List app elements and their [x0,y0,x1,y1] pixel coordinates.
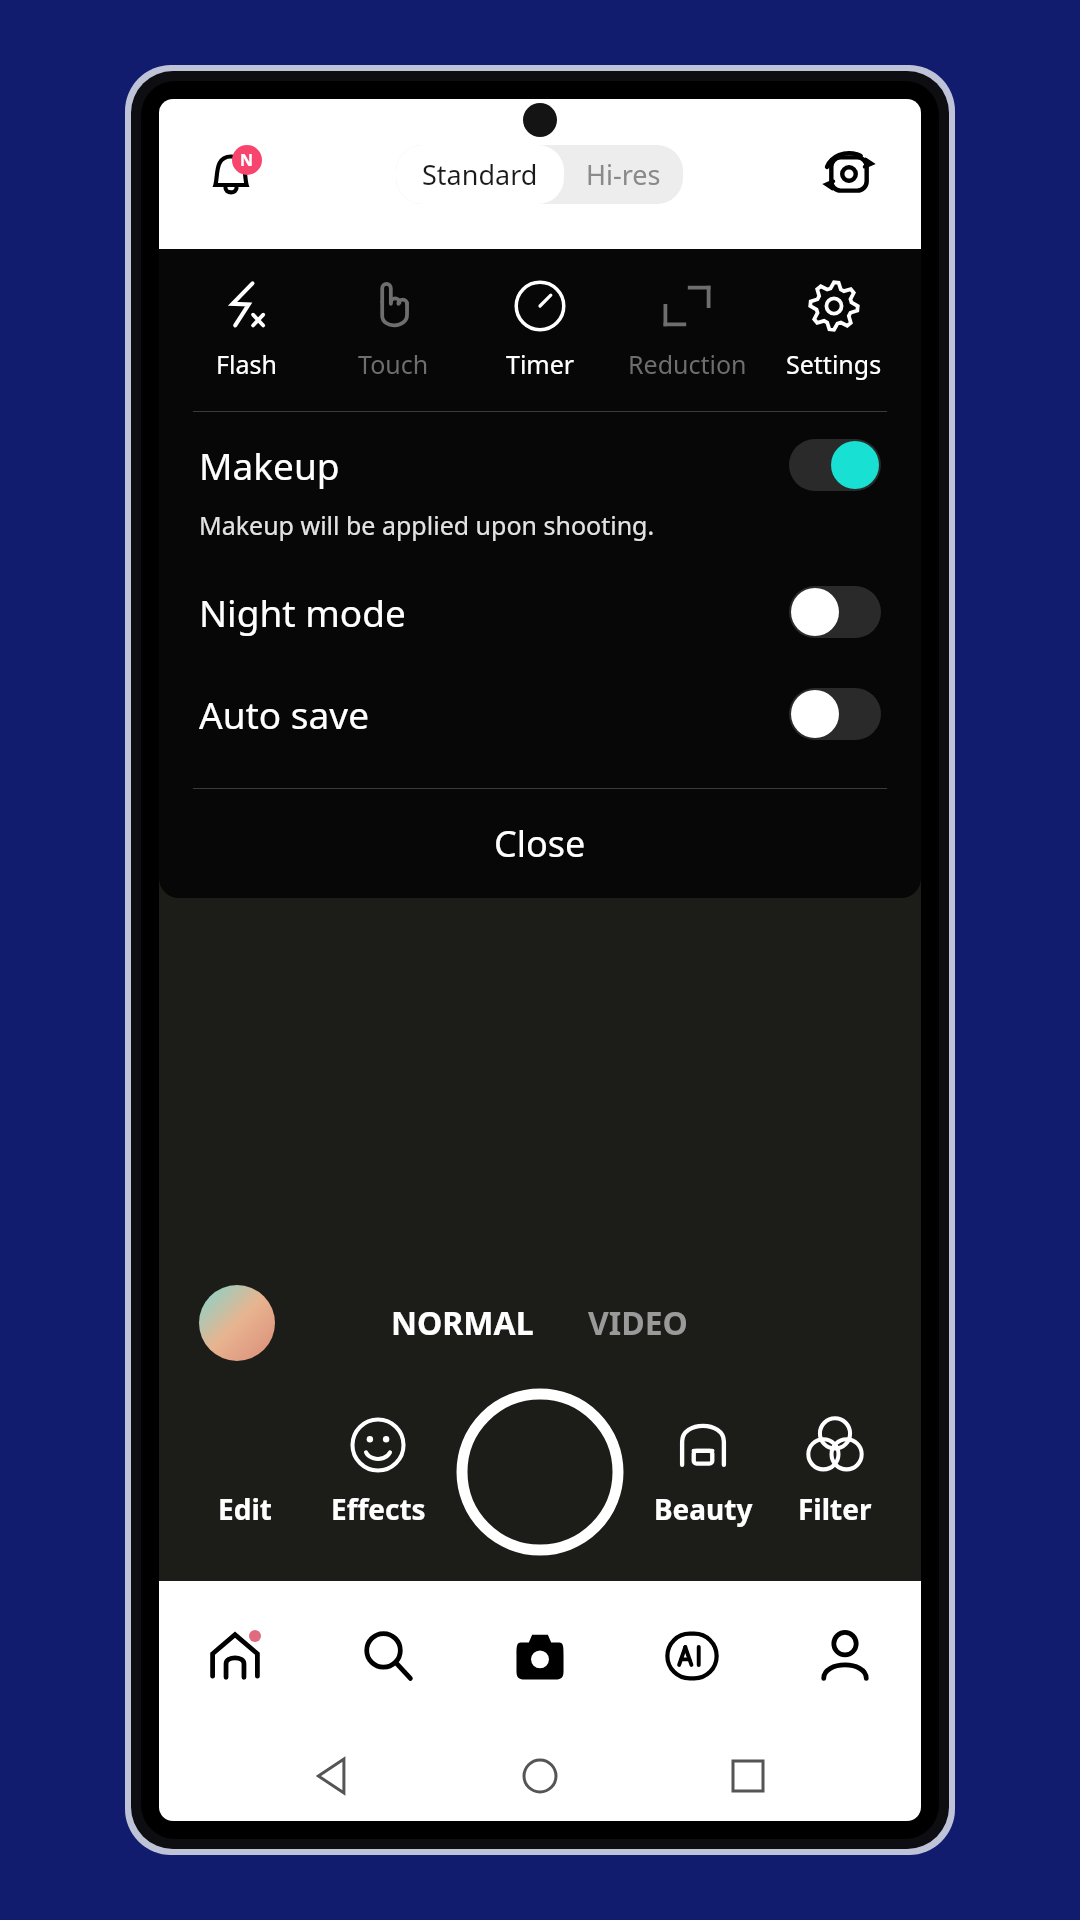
button[interactable]: Timer [475,275,605,385]
staticText: Close [494,819,586,868]
staticText: Flash [216,347,277,381]
button[interactable]: Reduction [622,275,752,385]
staticText: Edit [218,1490,272,1528]
staticText: Touch [358,347,429,381]
button[interactable]: Search [333,1601,443,1711]
button[interactable]: Toggle [789,586,881,638]
button[interactable]: Flash [181,275,311,385]
button[interactable]: Toggle [789,688,881,740]
staticText: N [240,149,254,171]
staticText: Settings [786,347,882,381]
button[interactable]: Home [505,1741,575,1811]
button[interactable]: Home [180,1601,290,1711]
staticText: elyusuf-ultra.com| [590,541,653,1441]
button[interactable]: Gallery [199,1285,275,1361]
button[interactable]: Touch [328,275,458,385]
staticText: elyusuf-ultra.com| [590,478,653,1378]
button[interactable]: Toggle [789,439,881,491]
staticText: Timer [506,347,575,381]
button[interactable]: Shutter [454,1387,626,1557]
staticText: Auto save [199,689,789,739]
staticText: VIDEO [588,1301,688,1345]
button[interactable]: Beauty [643,1412,763,1532]
staticText: elyusuf-ultra.com| [426,478,489,1378]
staticText: Beauty [654,1490,753,1528]
staticText: NORMAL [391,1301,534,1345]
staticText: elyusuf-ultra.com| [426,541,489,1441]
staticText: Makeup [199,440,340,490]
staticText: Standard [422,156,538,193]
staticText: Night mode [199,587,789,637]
button[interactable]: Standard [396,145,564,204]
button[interactable]: Hi-res [564,145,683,204]
staticText: Makeup will be applied upon shooting. [199,508,655,542]
button[interactable]: Effects [318,1412,438,1532]
button[interactable]: Switch camera [811,136,887,212]
button[interactable]: Notifications [193,136,269,212]
button[interactable]: Close [159,789,921,898]
staticText: Filter [798,1490,872,1528]
button[interactable]: AI [637,1601,747,1711]
button[interactable]: Recents [713,1741,783,1811]
button[interactable]: Auto save [159,680,921,748]
button[interactable]: NORMAL [379,1301,546,1345]
button[interactable]: Profile [790,1601,900,1711]
button[interactable]: VIDEO [576,1301,700,1345]
button[interactable]: Back [297,1741,367,1811]
button[interactable]: Night mode [159,578,921,646]
button[interactable]: Edit [185,1412,305,1532]
button[interactable]: Settings [769,275,899,385]
staticText: Hi-res [586,156,661,193]
staticText: Effects [331,1490,426,1528]
staticText: Reduction [628,347,747,381]
button[interactable]: Makeup [159,426,921,556]
button[interactable]: Camera [485,1601,595,1711]
button[interactable]: Filter [775,1412,895,1532]
